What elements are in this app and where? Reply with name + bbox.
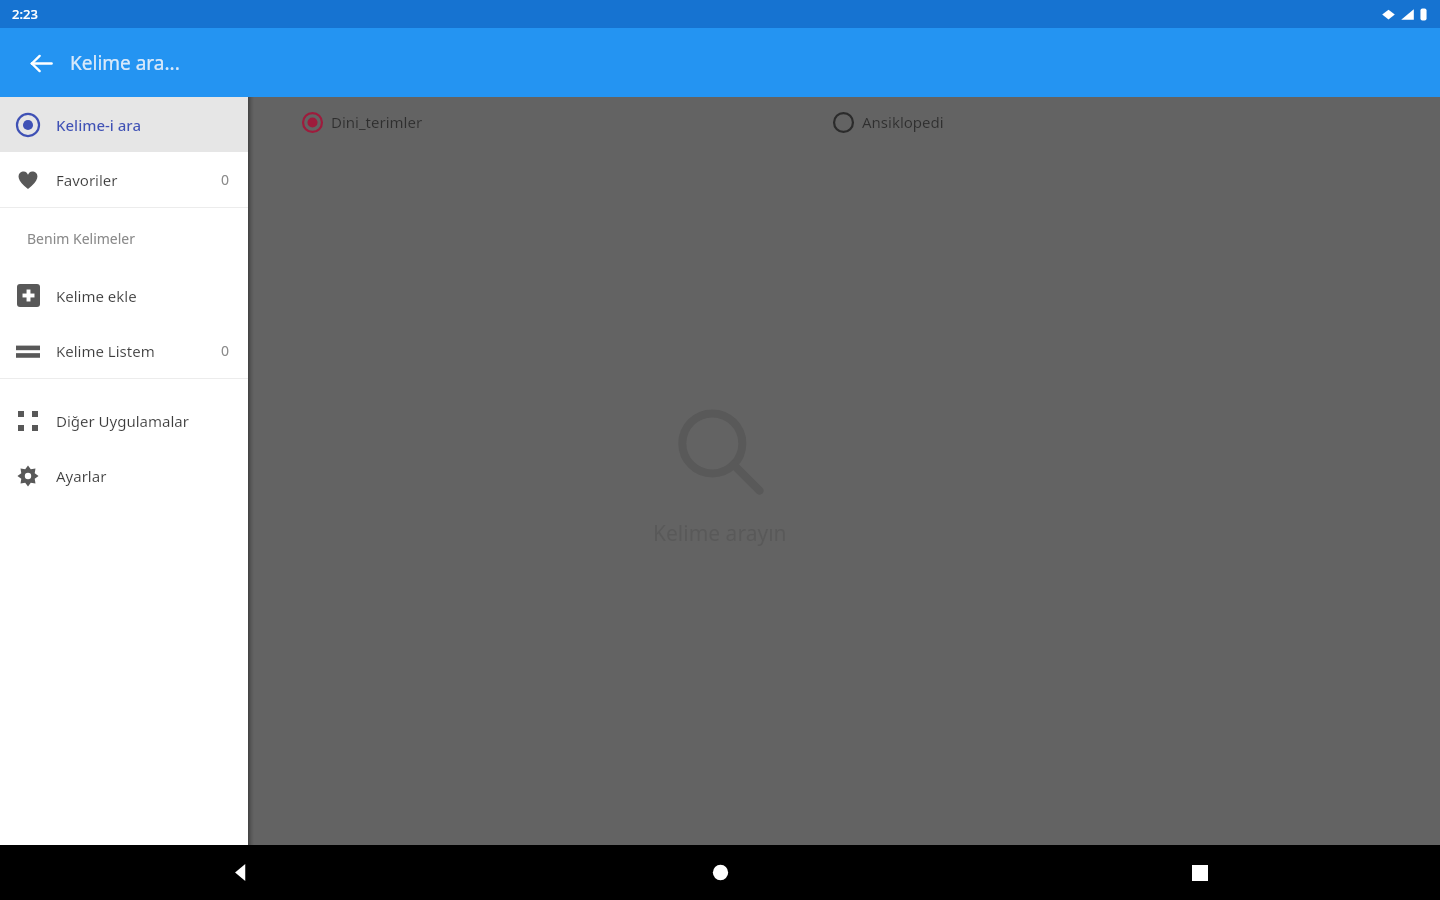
staticText: Kelime Listem: [56, 341, 155, 361]
button[interactable]: Diğer Uygulamalar: [0, 393, 248, 448]
staticText: Benim Kelimeler: [27, 229, 136, 248]
button[interactable]: Kelime ekle: [0, 268, 248, 323]
button[interactable]: Favoriler: [0, 152, 248, 207]
button[interactable]: Dini_terimler: [302, 97, 423, 147]
staticText: Diğer Uygulamalar: [56, 411, 189, 431]
staticText: 0: [221, 341, 230, 360]
button[interactable]: Home: [480, 845, 960, 900]
staticText: Ayarlar: [56, 466, 107, 486]
button[interactable]: Back: [0, 845, 480, 900]
staticText: Kelime ekle: [56, 286, 137, 306]
button[interactable]: Ansiklopedi: [833, 97, 944, 147]
button[interactable]: Kelime Listem: [0, 323, 248, 378]
staticText: Kelime-i ara: [56, 115, 141, 135]
staticText: Ansiklopedi: [862, 112, 944, 132]
button[interactable]: Ayarlar: [0, 448, 248, 503]
staticText: 0: [221, 170, 230, 189]
staticText: 2:23: [12, 5, 38, 23]
staticText: Kelime arayın: [653, 519, 787, 548]
staticText: Kelime ara...: [70, 50, 180, 76]
button[interactable]: Recents: [960, 845, 1440, 900]
staticText: Dini_terimler: [331, 112, 423, 132]
button[interactable]: Back: [21, 43, 61, 83]
staticText: Favoriler: [56, 170, 118, 190]
button[interactable]: Kelime-i ara: [0, 97, 248, 152]
